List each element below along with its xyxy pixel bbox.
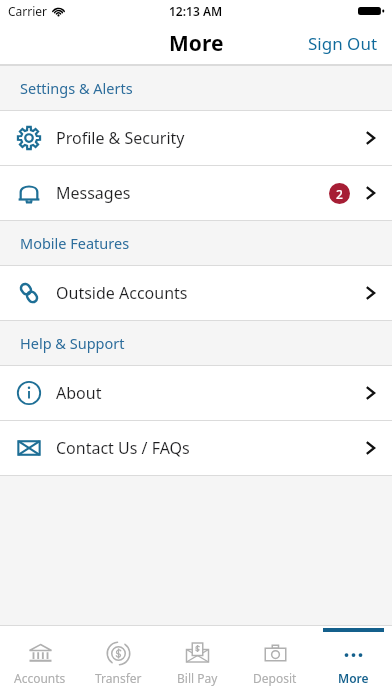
- staticText: Profile & Security: [56, 127, 185, 149]
- staticText: More: [338, 670, 369, 686]
- staticText: Sign Out: [308, 32, 378, 55]
- button[interactable]: About: [0, 366, 392, 420]
- button[interactable]: Contact Us / FAQs: [0, 421, 392, 475]
- other: More: [341, 641, 366, 666]
- other: Bill Pay: [185, 641, 210, 666]
- button[interactable]: Bill Pay: [158, 625, 236, 696]
- button[interactable]: Profile & Security: [0, 111, 392, 165]
- button[interactable]: Deposit: [236, 625, 314, 696]
- staticText: 12:13 AM: [169, 3, 223, 19]
- staticText: About: [56, 382, 102, 404]
- button[interactable]: More: [314, 625, 392, 696]
- staticText: Bill Pay: [177, 670, 218, 686]
- button[interactable]: Messages: [0, 166, 392, 220]
- staticText: Transfer: [95, 670, 142, 686]
- staticText: Carrier: [8, 3, 48, 19]
- staticText: Accounts: [14, 670, 66, 686]
- button[interactable]: Accounts: [0, 625, 79, 696]
- staticText: Help & Support: [20, 333, 125, 353]
- staticText: 2: [336, 186, 343, 202]
- other: Accounts: [28, 641, 53, 666]
- staticText: More: [169, 29, 224, 58]
- staticText: Settings & Alerts: [20, 78, 133, 98]
- button[interactable]: Outside Accounts: [0, 266, 392, 320]
- other: Transfer: [106, 641, 131, 666]
- staticText: Deposit: [253, 670, 297, 686]
- other: Deposit: [263, 641, 288, 666]
- staticText: Messages: [56, 182, 131, 204]
- staticText: Contact Us / FAQs: [56, 437, 190, 459]
- button[interactable]: Sign Out: [294, 24, 392, 63]
- staticText: Mobile Features: [20, 233, 130, 253]
- button[interactable]: Transfer: [79, 625, 158, 696]
- staticText: Outside Accounts: [56, 282, 188, 304]
